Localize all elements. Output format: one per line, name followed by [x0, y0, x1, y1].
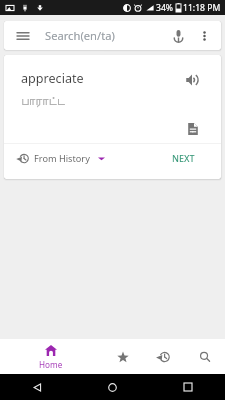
button[interactable]: NEXT — [172, 152, 195, 164]
button[interactable]: History — [143, 339, 184, 374]
button[interactable]: Voice search — [165, 21, 191, 50]
button[interactable]: Home — [0, 339, 102, 374]
button[interactable]: Show definition — [180, 117, 206, 141]
button[interactable]: Favourites — [102, 339, 143, 374]
staticText: 11:18 PM — [183, 2, 221, 14]
button[interactable]: Open navigation menu — [4, 21, 41, 50]
staticText: Home — [39, 359, 63, 370]
staticText: appreciate — [21, 70, 84, 87]
button[interactable]: Recents — [150, 374, 225, 400]
button[interactable]: Back — [0, 374, 75, 400]
staticText: பாராட்ட — [21, 95, 65, 108]
staticText: 34% — [156, 2, 173, 14]
staticText: From History — [34, 152, 90, 165]
button[interactable]: More options — [191, 21, 217, 50]
staticText: Search(en/ta) — [45, 28, 115, 43]
button[interactable]: Search — [184, 339, 225, 374]
button[interactable]: From History — [18, 152, 105, 165]
button[interactable]: Home — [75, 374, 150, 400]
staticText: NEXT — [172, 152, 195, 164]
button[interactable]: Pronounce — [179, 67, 205, 93]
